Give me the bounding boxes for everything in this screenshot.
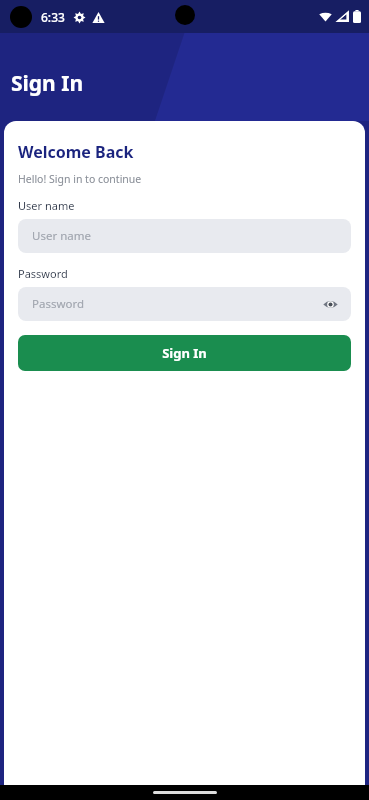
staticText: Password — [18, 266, 68, 281]
staticText: Password — [32, 296, 85, 312]
button[interactable]: Password — [18, 287, 351, 321]
staticText: Welcome Back — [18, 141, 134, 163]
button[interactable]: Show password — [320, 294, 340, 314]
staticText: Sign In — [162, 344, 207, 362]
button[interactable]: Sign In — [18, 335, 351, 371]
staticText: User name — [32, 228, 91, 244]
staticText: Hello! Sign in to continue — [18, 172, 142, 186]
staticText: 6:33 — [41, 9, 65, 25]
staticText: Sign In — [11, 69, 84, 98]
staticText: User name — [18, 198, 75, 213]
button[interactable]: User name — [18, 219, 351, 253]
